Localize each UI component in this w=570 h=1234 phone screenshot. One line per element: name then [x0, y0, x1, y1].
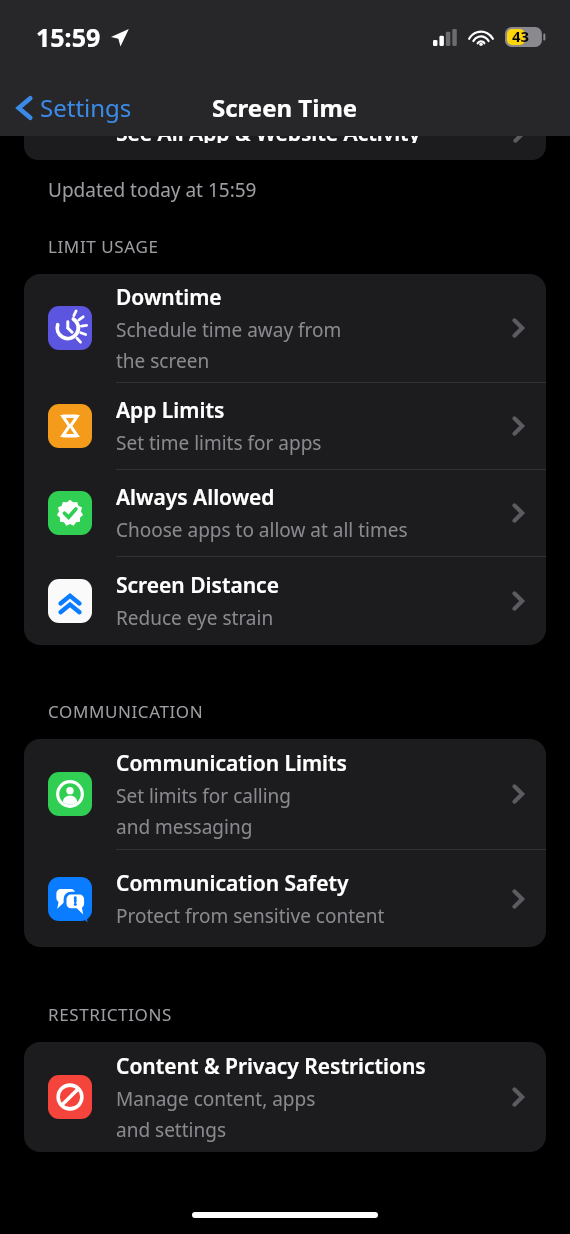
- staticText: Reduce eye strain: [116, 605, 274, 631]
- staticText: Communication Limits: [116, 749, 347, 778]
- staticText: Set limits for calling and messaging: [116, 783, 292, 840]
- button[interactable]: Communication Limits: [24, 739, 546, 849]
- staticText: Screen Distance: [116, 571, 279, 600]
- staticText: Downtime: [116, 283, 222, 312]
- button[interactable]: App Limits: [24, 383, 546, 469]
- other: Communication Limits: [48, 772, 92, 816]
- staticText: 43: [512, 26, 530, 46]
- button[interactable]: Downtime: [24, 274, 546, 382]
- staticText: RESTRICTIONS: [48, 1003, 172, 1026]
- staticText: COMMUNICATION: [48, 700, 204, 723]
- other: Screen Distance: [48, 579, 92, 623]
- staticText: Settings: [40, 91, 132, 124]
- other: Communication Safety: [48, 877, 92, 921]
- other: App Limits: [48, 404, 92, 448]
- staticText: Protect from sensitive content: [116, 903, 385, 929]
- staticText: Always Allowed: [116, 483, 275, 512]
- button[interactable]: Screen Distance: [24, 557, 546, 645]
- button[interactable]: Communication Safety: [24, 850, 546, 947]
- staticText: Content & Privacy Restrictions: [116, 1052, 426, 1081]
- staticText: Communication Safety: [116, 869, 349, 898]
- staticText: Manage content, apps and settings: [116, 1086, 316, 1143]
- staticText: App Limits: [116, 396, 225, 425]
- button[interactable]: Content and Privacy Restrictions: [24, 1042, 546, 1152]
- button[interactable]: Always Allowed: [24, 470, 546, 556]
- button[interactable]: See All App & Website Activity: [24, 136, 546, 160]
- button[interactable]: Settings: [8, 83, 144, 132]
- other: Always Allowed: [48, 491, 92, 535]
- staticText: Screen Time: [212, 91, 358, 124]
- staticText: Schedule time away from the screen: [116, 317, 342, 374]
- staticText: 15:59: [36, 20, 101, 54]
- staticText: Set time limits for apps: [116, 430, 322, 456]
- other: Content and Privacy Restrictions: [48, 1075, 92, 1119]
- staticText: LIMIT USAGE: [48, 235, 159, 258]
- staticText: Choose apps to allow at all times: [116, 517, 408, 543]
- other: Downtime: [48, 306, 92, 350]
- staticText: Updated today at 15:59: [48, 177, 257, 203]
- staticText: See All App & Website Activity: [116, 136, 421, 143]
